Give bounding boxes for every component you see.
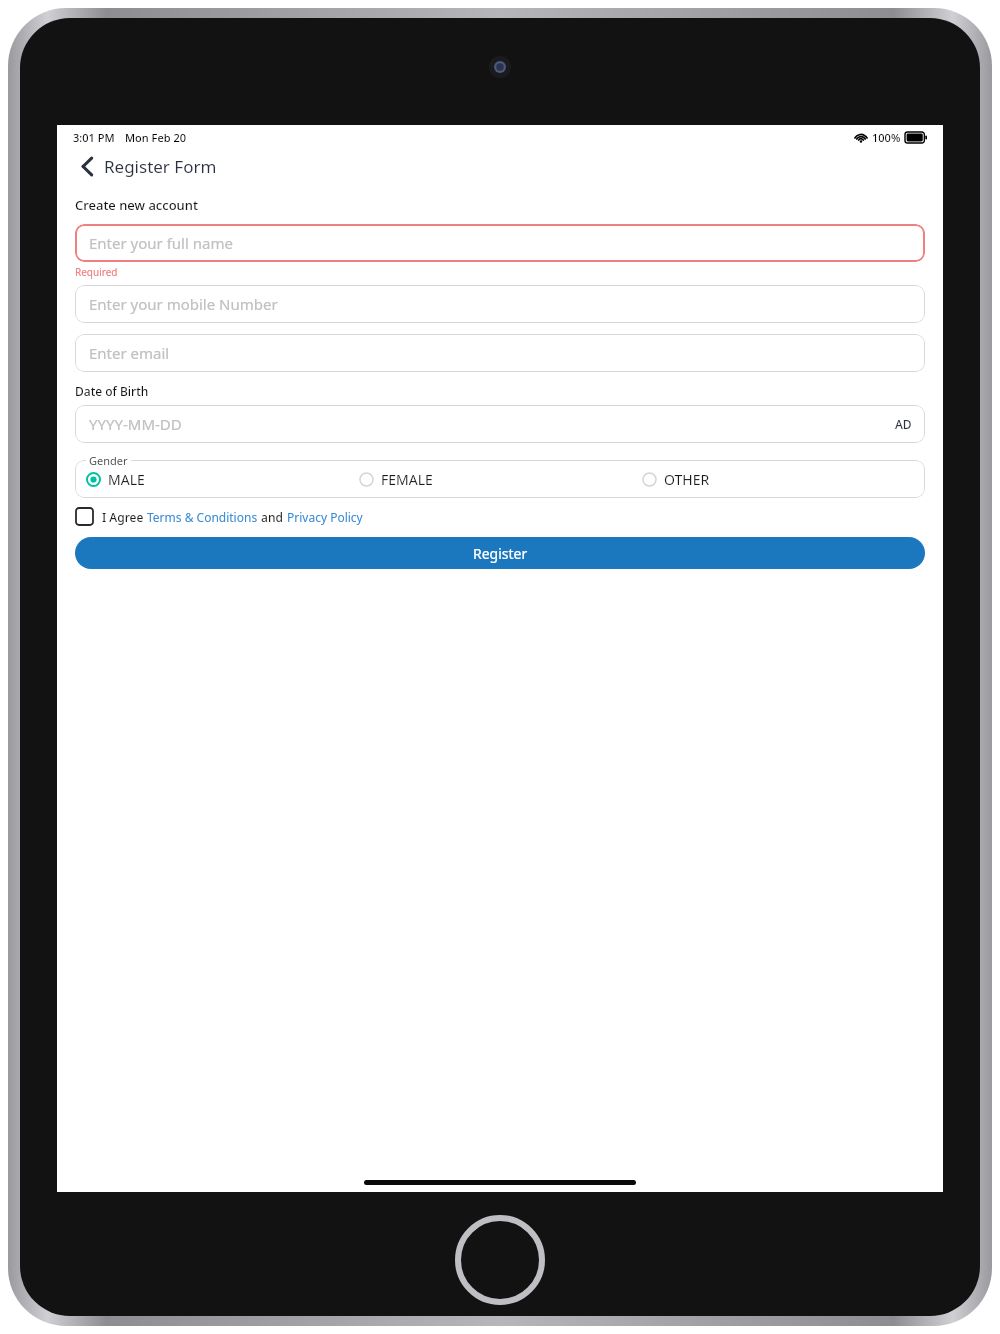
staticText: OTHER xyxy=(664,470,710,489)
button[interactable]: Terms & Conditions xyxy=(147,509,258,525)
staticText: Mon Feb 20 xyxy=(125,130,186,145)
staticText: Gender xyxy=(89,453,128,468)
staticText: FEMALE xyxy=(381,470,433,489)
staticText: I Agree xyxy=(102,509,147,525)
button[interactable]: YYYY-MM-DD xyxy=(75,405,925,443)
staticText: 3:01 PM xyxy=(73,130,115,145)
button[interactable]: MALE xyxy=(86,470,359,489)
staticText: YYYY-MM-DD xyxy=(89,414,182,434)
button[interactable]: Enter your full name xyxy=(75,224,925,262)
button[interactable]: FEMALE xyxy=(359,470,642,489)
button[interactable]: Enter your mobile Number xyxy=(75,285,925,323)
staticText: MALE xyxy=(108,470,145,489)
staticText: Privacy Policy xyxy=(287,509,363,525)
staticText: Enter email xyxy=(89,343,170,363)
staticText: Enter your full name xyxy=(89,233,233,253)
button[interactable]: Privacy Policy xyxy=(287,509,363,525)
staticText: and xyxy=(258,509,287,525)
staticText: Register Form xyxy=(104,155,217,178)
staticText: Create new account xyxy=(75,196,198,214)
button[interactable]: Back xyxy=(75,154,99,178)
button[interactable]: OTHER xyxy=(642,470,925,489)
button[interactable]: Register xyxy=(75,537,925,569)
staticText: Register xyxy=(473,544,528,563)
staticText: Enter your mobile Number xyxy=(89,294,278,314)
staticText: Required xyxy=(75,265,118,279)
button[interactable]: Enter email xyxy=(75,334,925,372)
staticText: AD xyxy=(895,416,912,432)
staticText: 100% xyxy=(872,130,901,145)
button[interactable]: I Agree checkbox xyxy=(75,507,94,526)
staticText: Terms & Conditions xyxy=(147,509,258,525)
staticText: Date of Birth xyxy=(75,383,149,399)
